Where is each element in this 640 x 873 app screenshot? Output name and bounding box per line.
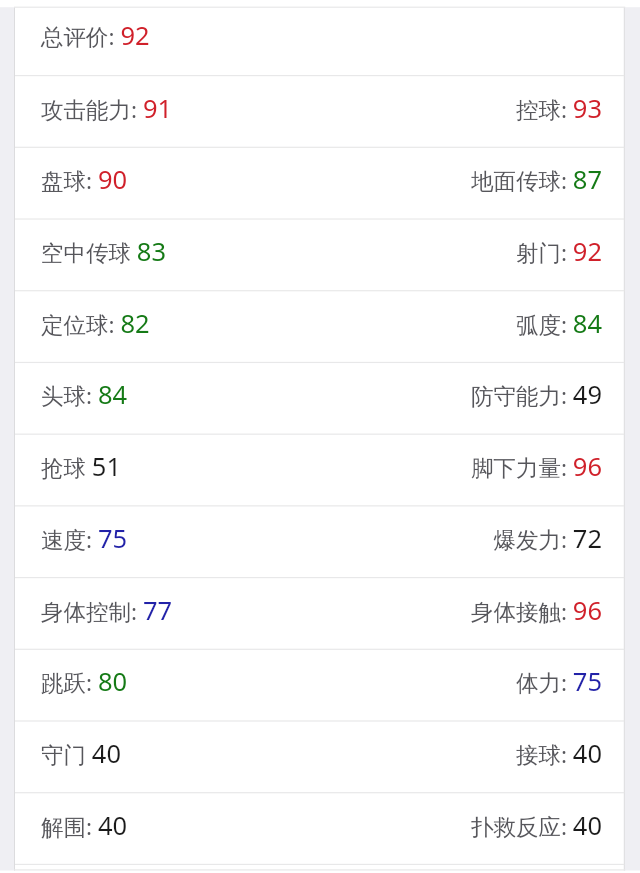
staticText: 射门: 92: [515, 234, 602, 269]
button[interactable]: 守门 40: [15, 721, 624, 793]
staticText: 守门 40: [41, 736, 122, 771]
staticText: 控球: 93: [515, 91, 602, 126]
button[interactable]: 跳跃: 80: [15, 649, 624, 721]
staticText: 盘球: 90: [41, 162, 128, 197]
staticText: 解围: 40: [41, 808, 128, 843]
staticText: 地面传球: 87: [470, 162, 602, 197]
staticText: 空中传球 83: [41, 234, 167, 269]
button[interactable]: 攻击能力: 91: [15, 76, 624, 148]
button[interactable]: 总评价: 92: [15, 7, 624, 75]
staticText: 脚下力量: 96: [470, 449, 602, 484]
staticText: 攻击能力: 91: [41, 91, 173, 126]
button[interactable]: 定位球: 82: [15, 291, 624, 363]
staticText: 总评价: 92: [41, 18, 150, 53]
staticText: 定位球: 82: [41, 306, 150, 341]
staticText: 身体控制: 77: [41, 593, 173, 628]
staticText: 接球: 40: [515, 736, 602, 771]
button[interactable]: 速度: 75: [15, 506, 624, 578]
staticText: 弧度: 84: [515, 306, 602, 341]
staticText: 抢球 51: [41, 449, 122, 484]
staticText: 速度: 75: [41, 521, 128, 556]
staticText: 爆发力: 72: [493, 521, 602, 556]
button[interactable]: 头球: 84: [15, 362, 624, 434]
button[interactable]: 盘球: 90: [15, 147, 624, 219]
staticText: 扑救反应: 40: [470, 808, 602, 843]
button[interactable]: 身体控制: 77: [15, 578, 624, 650]
staticText: 体力: 75: [515, 664, 602, 699]
button[interactable]: 解围: 40: [15, 793, 624, 871]
staticText: 防守能力: 49: [470, 377, 602, 412]
staticText: 身体接触: 96: [470, 593, 602, 628]
button[interactable]: 抢球 51: [15, 434, 624, 506]
staticText: 跳跃: 80: [41, 664, 128, 699]
button[interactable]: 空中传球 83: [15, 219, 624, 291]
staticText: 头球: 84: [41, 377, 128, 412]
